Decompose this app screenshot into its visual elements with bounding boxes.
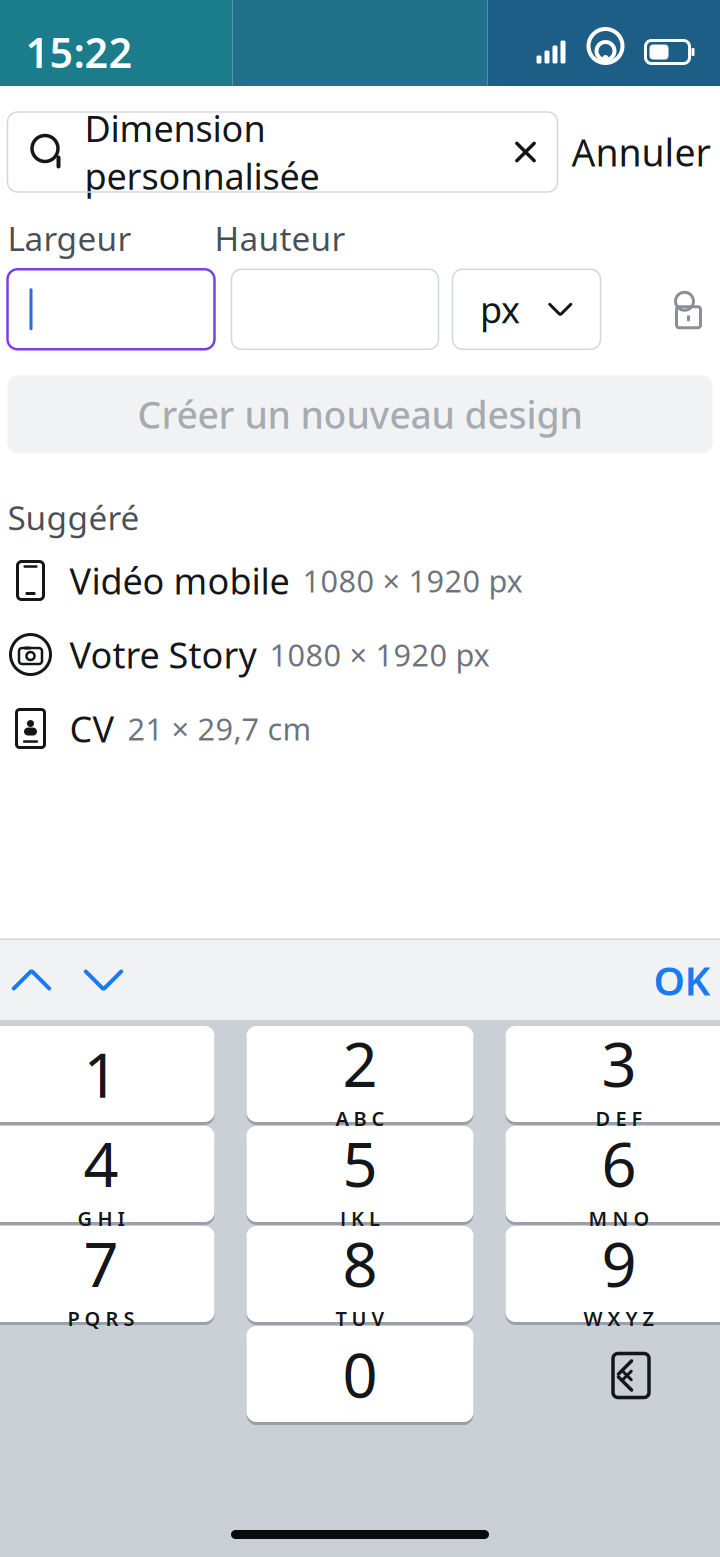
staticText: M N O: [588, 1205, 649, 1231]
staticText: 6: [601, 1122, 636, 1204]
button[interactable]: 1: [0, 1026, 214, 1125]
staticText: Vidéo mobile: [69, 557, 289, 604]
button[interactable]: Votre Story: [0, 617, 720, 691]
button[interactable]: 8: [246, 1226, 473, 1325]
staticText: 4: [83, 1122, 118, 1204]
staticText: P Q R S: [67, 1305, 134, 1331]
button[interactable]: Supprimer: [505, 1326, 720, 1425]
button[interactable]: Champ précédent: [0, 941, 67, 1019]
button[interactable]: Largeur: [7, 269, 214, 349]
button[interactable]: Hauteur: [231, 269, 438, 349]
staticText: W X Y Z: [583, 1305, 654, 1331]
button[interactable]: 4: [0, 1126, 214, 1225]
staticText: 7: [83, 1222, 118, 1304]
staticText: Largeur: [7, 216, 131, 260]
staticText: 0: [342, 1333, 377, 1415]
staticText: OK: [653, 953, 710, 1006]
button[interactable]: 9: [505, 1226, 720, 1325]
staticText: Créer un nouveau design: [137, 389, 582, 439]
staticText: 9: [601, 1222, 636, 1304]
staticText: CV: [69, 705, 114, 752]
staticText: J K L: [340, 1205, 380, 1231]
button[interactable]: 7: [0, 1226, 214, 1325]
staticText: 1080 × 1920 px: [269, 634, 489, 675]
staticText: 8: [342, 1222, 377, 1304]
button[interactable]: OK: [635, 941, 720, 1019]
button[interactable]: Verrouiller les proportions: [660, 274, 716, 344]
staticText: Dimension personnalisée: [84, 104, 319, 200]
staticText: A B C: [335, 1105, 384, 1131]
staticText: px: [480, 285, 520, 333]
staticText: Hauteur: [214, 216, 345, 260]
staticText: 21 × 29,7 cm: [127, 708, 311, 749]
staticText: G H I: [77, 1205, 124, 1231]
staticText: D E F: [595, 1105, 642, 1131]
staticText: Annuler: [571, 127, 710, 177]
staticText: 1: [83, 1033, 118, 1115]
staticText: 2: [342, 1022, 377, 1104]
staticText: Votre Story: [69, 631, 256, 678]
button[interactable]: 0: [246, 1326, 473, 1425]
button[interactable]: 2: [246, 1026, 473, 1125]
button[interactable]: Créer un nouveau design: [7, 375, 712, 453]
staticText: Suggéré: [7, 495, 139, 540]
staticText: T U V: [335, 1305, 384, 1331]
button[interactable]: 6: [505, 1126, 720, 1225]
staticText: 3: [601, 1022, 636, 1104]
button[interactable]: Champ suivant: [67, 941, 139, 1019]
button[interactable]: Annuler: [557, 117, 720, 187]
button[interactable]: 5: [246, 1126, 473, 1225]
button[interactable]: 3: [505, 1026, 720, 1125]
button[interactable]: Clear search: [493, 120, 557, 184]
staticText: 15:22: [25, 25, 132, 79]
button[interactable]: Vidéo mobile: [0, 543, 720, 617]
button[interactable]: Unité px: [452, 269, 600, 349]
button[interactable]: CV: [0, 691, 720, 765]
staticText: 1080 × 1920 px: [302, 560, 522, 601]
staticText: 5: [342, 1122, 377, 1204]
